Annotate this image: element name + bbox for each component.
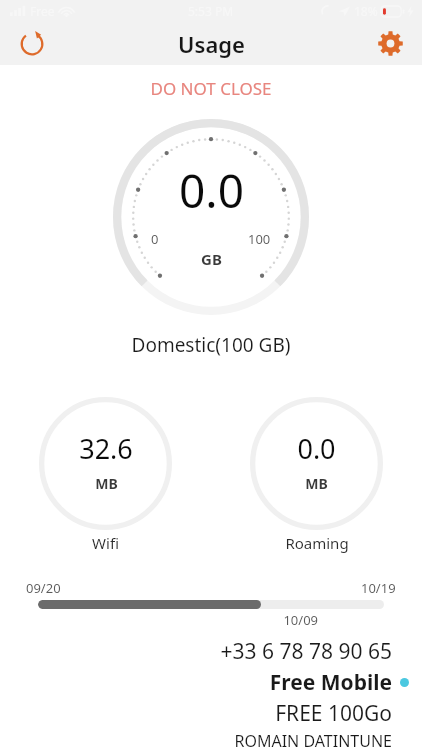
staticText: +33 6 78 78 90 65 bbox=[220, 637, 392, 666]
staticText: GB bbox=[201, 249, 222, 269]
staticText: 0.0 bbox=[297, 430, 336, 467]
staticText: FREE 100Go bbox=[275, 699, 392, 728]
staticText: 09/20 bbox=[26, 579, 61, 597]
staticText: 100 bbox=[248, 230, 271, 248]
staticText: MB bbox=[95, 474, 118, 493]
button[interactable]: 0.0 bbox=[250, 397, 383, 530]
staticText: ROMAIN DATINTUNE bbox=[234, 730, 392, 750]
staticText: 10/09 bbox=[26, 611, 318, 629]
button[interactable]: Refresh bbox=[10, 22, 54, 65]
button[interactable]: 0.0 bbox=[113, 119, 309, 315]
staticText: Domestic(100 GB) bbox=[0, 332, 422, 358]
button[interactable]: Settings bbox=[368, 22, 412, 65]
staticText: 0.0 bbox=[179, 159, 244, 222]
staticText: Free Mobile bbox=[269, 668, 392, 697]
staticText: Usage bbox=[178, 29, 245, 59]
staticText: Wifi bbox=[92, 533, 119, 553]
staticText: 32.6 bbox=[79, 430, 133, 467]
staticText: 0 bbox=[151, 230, 159, 248]
staticText: DO NOT CLOSE bbox=[0, 77, 422, 100]
staticText: Roaming bbox=[285, 533, 349, 553]
staticText: 10/19 bbox=[361, 579, 396, 597]
staticText: MB bbox=[305, 474, 328, 493]
button[interactable]: 32.6 bbox=[39, 397, 172, 530]
